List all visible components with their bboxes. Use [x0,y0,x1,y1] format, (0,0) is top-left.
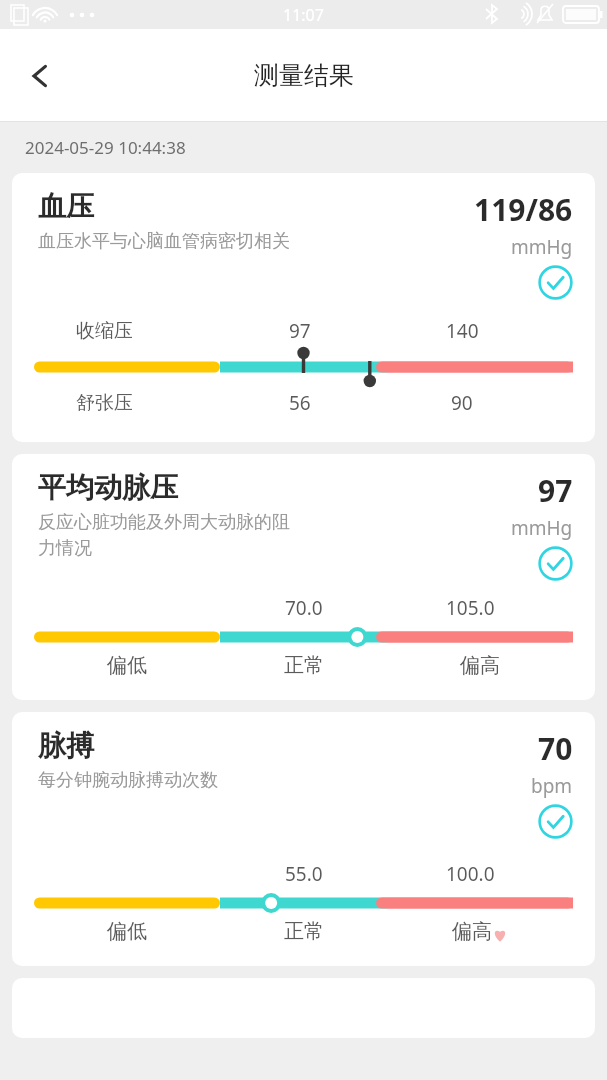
staticText: 90 [451,390,473,416]
staticText: 偏低 [107,653,147,678]
staticText: 测量结果 [254,60,354,91]
staticText: 血压水平与心脑血管病密切相关 [38,230,290,253]
staticText: 收缩压 [76,319,133,343]
staticText: 每分钟腕动脉搏动次数 [38,769,218,792]
staticText: 偏低 [107,919,147,944]
staticText: mmHg [511,515,573,541]
staticText: 脉搏 [38,728,94,763]
staticText: 偏高 [452,919,492,944]
staticText: mmHg [511,234,573,260]
staticText: 2024-05-29 10:44:38 [25,136,186,159]
staticText: 正常 [284,653,324,678]
staticText: 119/86 [474,189,573,230]
staticText: 反应心脏功能及外周大动脉的阻 力情况 [38,511,290,559]
staticText: 100.0 [446,861,495,887]
staticText: 舒张压 [76,391,133,415]
staticText: 11:07 [283,4,324,26]
button[interactable]: 脉搏 [12,712,595,966]
staticText: 140 [446,318,479,344]
staticText: 血压 [38,189,94,224]
staticText: bpm [531,773,573,799]
staticText: 97 [538,470,573,511]
staticText: 55.0 [285,861,323,887]
staticText: 70 [538,728,573,769]
staticText: 70.0 [285,595,323,621]
staticText: 56 [289,390,311,416]
staticText: 偏高 [460,653,500,678]
staticText: 97 [289,318,311,344]
button[interactable]: 平均动脉压 [12,454,595,700]
staticText: 105.0 [446,595,495,621]
staticText: 正常 [284,919,324,944]
staticText: 平均动脉压 [38,470,178,505]
button[interactable]: Back [8,44,72,108]
button[interactable]: 血压 [12,173,595,442]
